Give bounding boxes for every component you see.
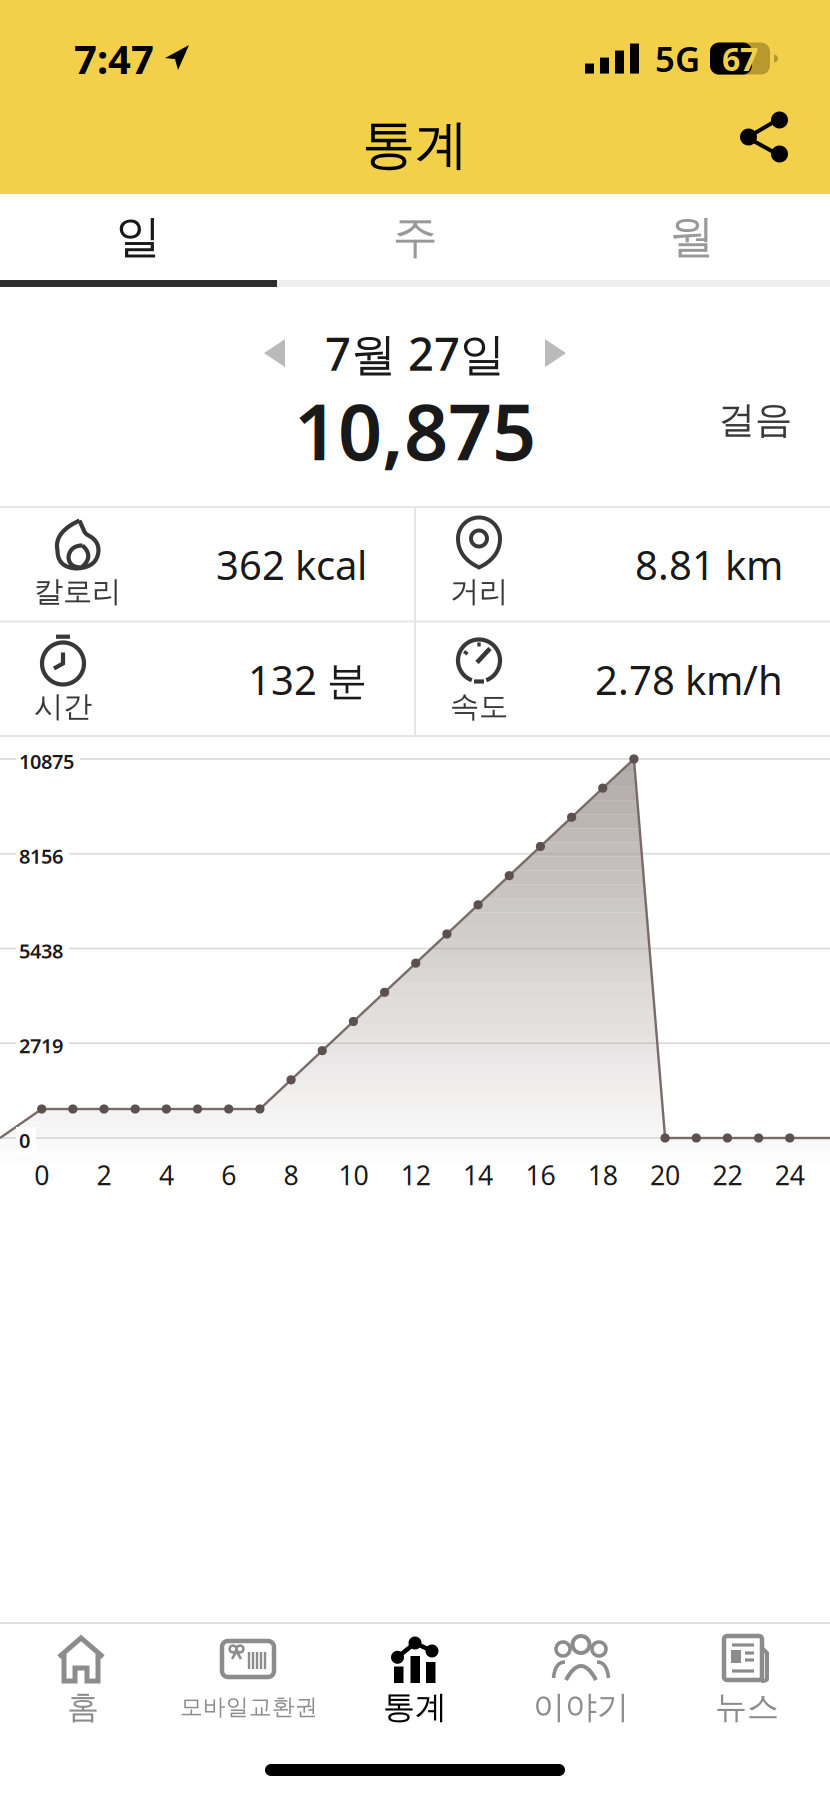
staticText: 2.78 km/h — [595, 653, 783, 706]
button[interactable]: 모바일교환권 — [166, 1629, 332, 1725]
staticText: 2 — [96, 1157, 111, 1193]
staticText: 5G — [655, 35, 700, 81]
staticText: 월 — [669, 209, 714, 265]
button[interactable]: 일 — [0, 194, 277, 280]
staticText: 4 — [159, 1157, 174, 1193]
staticText: 5438 — [19, 937, 63, 964]
staticText: 16 — [525, 1157, 555, 1193]
staticText: 주 — [392, 209, 437, 265]
staticText: 10875 — [19, 748, 74, 775]
staticText: 통계 — [383, 1687, 447, 1727]
staticText: 일 — [116, 209, 161, 265]
button[interactable]: 이야기 — [498, 1629, 664, 1725]
staticText: 거리 — [450, 573, 508, 609]
staticText: 7:47 — [74, 32, 154, 85]
staticText: 14 — [463, 1157, 493, 1193]
staticText: 2719 — [19, 1032, 63, 1059]
staticText: 10 — [338, 1157, 368, 1193]
staticText: 362 kcal — [216, 538, 367, 591]
staticText: 0 — [19, 1127, 30, 1154]
staticText: 8 — [284, 1157, 299, 1193]
staticText: 24 — [775, 1157, 805, 1193]
button[interactable]: 홈 — [0, 1629, 166, 1725]
staticText: 이야기 — [533, 1687, 629, 1727]
staticText: 8.81 km — [635, 538, 783, 591]
staticText: 7월 27일 — [325, 323, 505, 383]
staticText: 홈 — [67, 1687, 99, 1727]
button[interactable]: 다음 날짜 — [545, 339, 566, 367]
staticText: 22 — [712, 1157, 742, 1193]
staticText: 걸음 — [718, 397, 792, 443]
staticText: 뉴스 — [715, 1687, 779, 1727]
staticText: 12 — [401, 1157, 431, 1193]
staticText: 8156 — [19, 843, 63, 869]
staticText: 18 — [588, 1157, 618, 1193]
staticText: 속도 — [450, 688, 508, 724]
button[interactable]: 이전 날짜 — [264, 339, 285, 367]
staticText: 132 분 — [248, 653, 367, 706]
staticText: 0 — [34, 1157, 49, 1193]
staticText: 6 — [221, 1157, 236, 1193]
staticText: 20 — [650, 1157, 680, 1193]
staticText: 10,875 — [294, 379, 536, 482]
button[interactable]: 주 — [277, 194, 553, 280]
staticText: 모바일교환권 — [180, 1693, 318, 1721]
staticText: 67 — [722, 37, 758, 80]
button[interactable]: 뉴스 — [664, 1629, 830, 1725]
staticText: 통계 — [362, 112, 468, 177]
button[interactable]: 월 — [553, 194, 830, 280]
button[interactable]: 공유 — [740, 112, 788, 162]
staticText: 시간 — [34, 688, 92, 724]
staticText: 칼로리 — [34, 573, 121, 609]
button[interactable]: 통계 — [332, 1629, 498, 1725]
